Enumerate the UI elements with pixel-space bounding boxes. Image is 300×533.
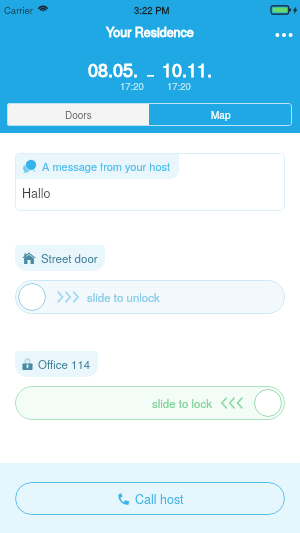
staticText: 17:20 xyxy=(120,79,144,93)
button[interactable]: More options xyxy=(272,23,296,47)
staticText: A message from your host xyxy=(42,158,171,174)
staticText: slide to unlock xyxy=(87,289,160,305)
staticText: Your Residence xyxy=(106,23,194,41)
button[interactable]: Map xyxy=(149,103,292,126)
staticText: 10.11. xyxy=(162,56,213,82)
staticText: Doors xyxy=(65,108,92,122)
button[interactable]: Office 114 xyxy=(15,351,98,377)
staticText: 3:22 PM xyxy=(134,3,170,17)
staticText: Map xyxy=(211,108,231,122)
button[interactable]: slide to unlock xyxy=(15,280,285,314)
staticText: 17:20 xyxy=(167,79,191,93)
button[interactable]: Doors xyxy=(7,103,149,126)
staticText: slide to lock xyxy=(152,395,213,411)
staticText: Carrier xyxy=(4,3,34,17)
staticText: Hallo xyxy=(22,184,51,202)
staticText: Office 114 xyxy=(38,356,91,372)
button[interactable]: Call host xyxy=(15,482,285,515)
button[interactable]: slide to lock xyxy=(15,386,285,420)
staticText: 08.05. xyxy=(88,56,139,82)
staticText: Street door xyxy=(41,250,98,266)
staticText: Call host xyxy=(135,490,184,508)
button[interactable]: Street door xyxy=(15,245,105,271)
